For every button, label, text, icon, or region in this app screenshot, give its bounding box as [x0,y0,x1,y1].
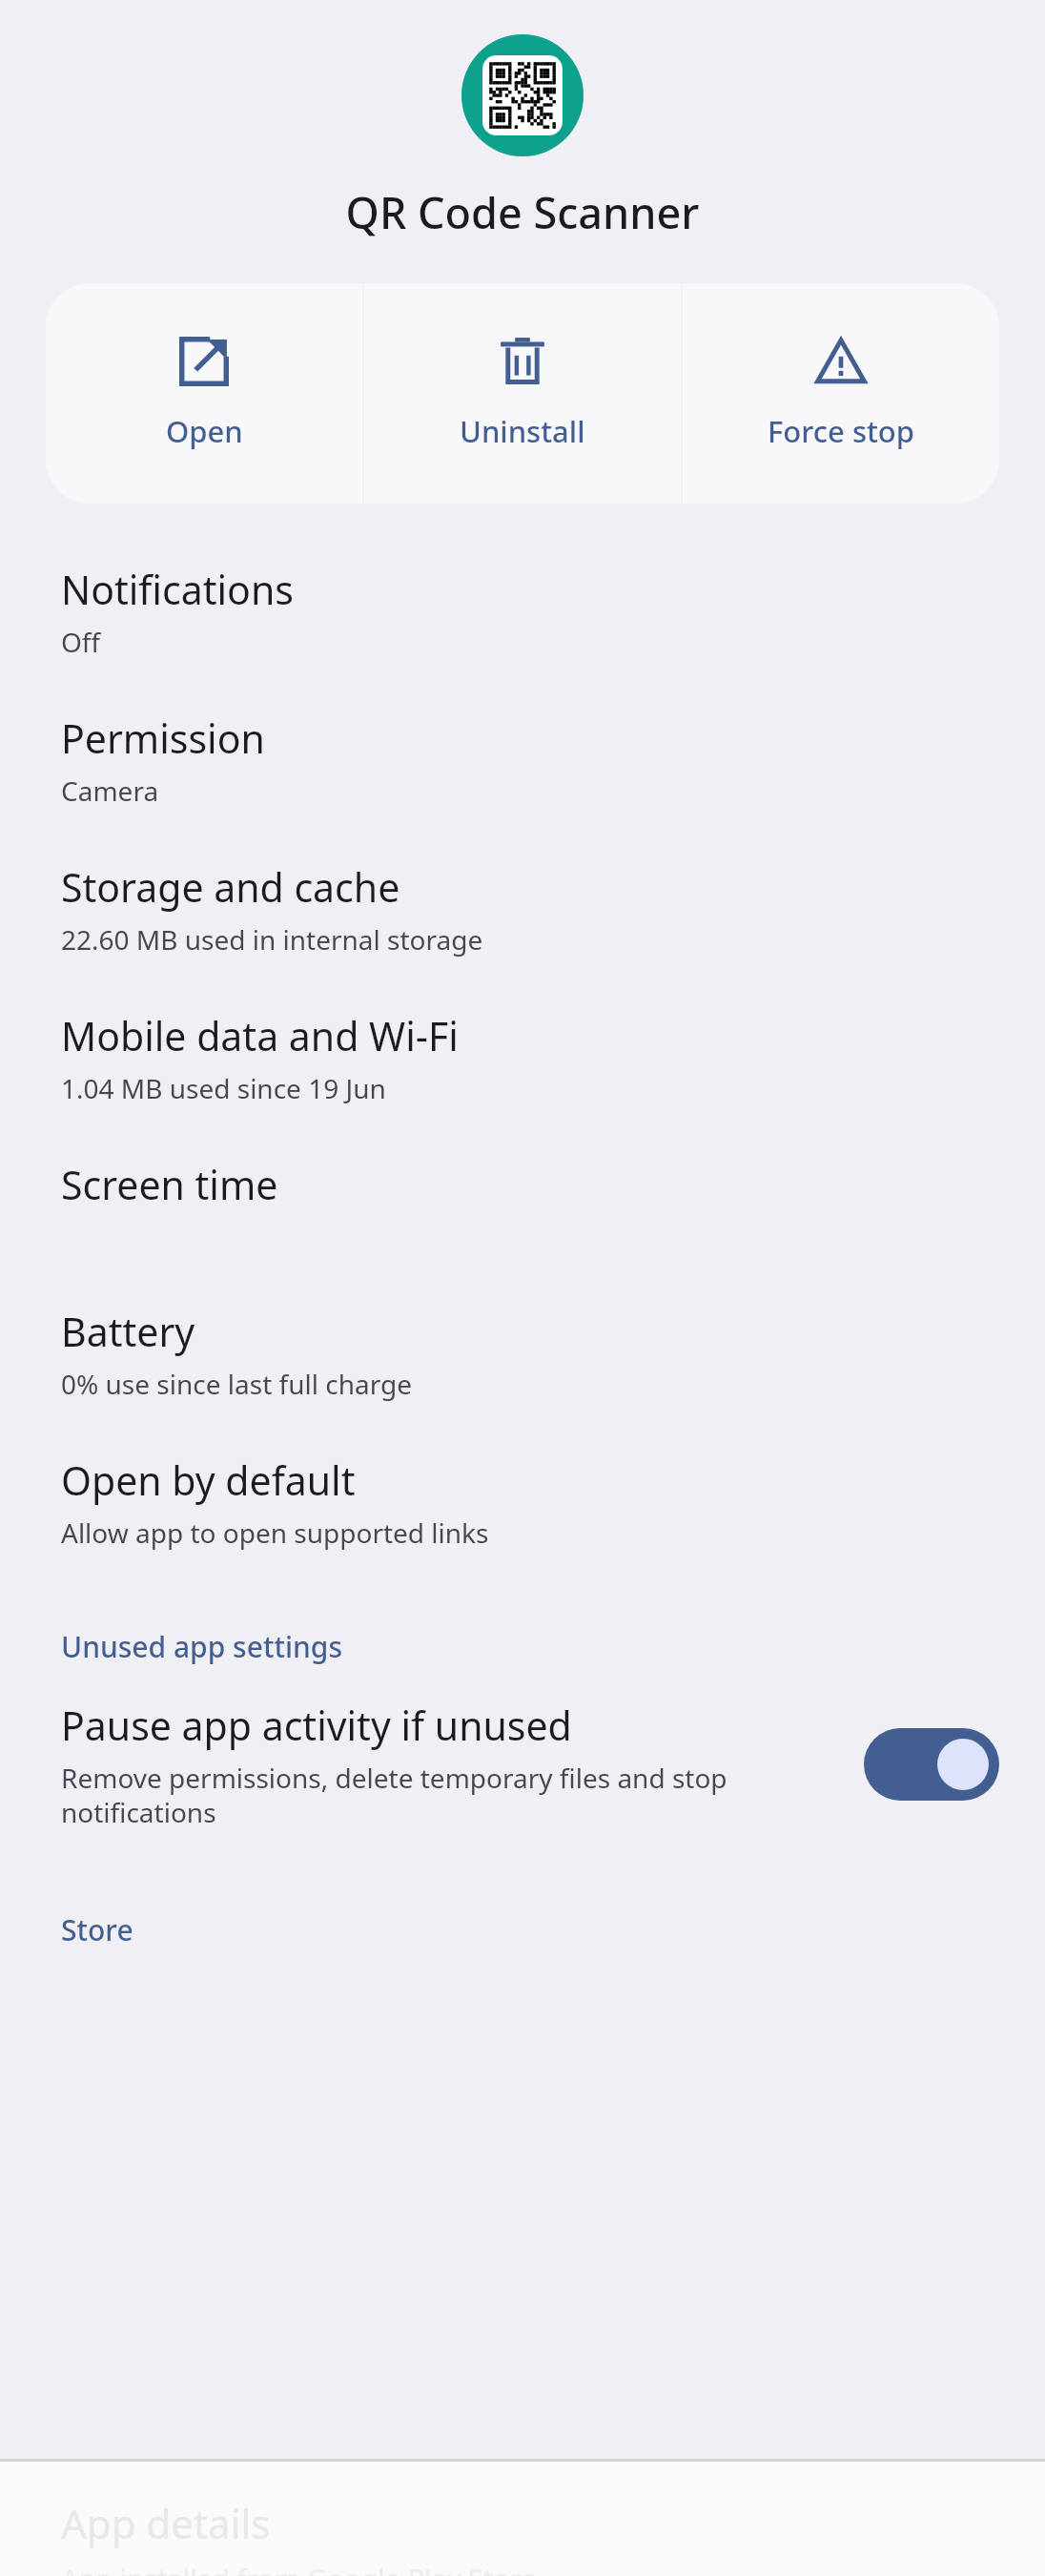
staticText: Off [61,624,101,660]
staticText: App installed from Google Play Store [61,2560,537,2576]
staticText: Mobile data and Wi-Fi [61,1009,459,1062]
other: Force stop [816,337,866,386]
staticText: App details [61,2496,271,2550]
staticText: Camera [61,773,159,809]
staticText: 22.60 MB used in internal storage [61,921,483,958]
button[interactable]: Notifications [0,549,1045,698]
staticText: QR Code Scanner [0,183,1045,241]
button[interactable]: Screen time [0,1144,1045,1291]
staticText: 1.04 MB used since 19 Jun [61,1070,386,1106]
staticText: Uninstall [460,411,585,451]
button[interactable]: Pause app activity if unused toggle [864,1728,999,1801]
button[interactable]: Uninstall [364,283,681,504]
button[interactable]: Permission [0,698,1045,847]
staticText: Notifications [61,563,294,616]
button[interactable]: Battery [0,1291,1045,1440]
staticText: Unused app settings [61,1627,342,1666]
button[interactable]: Open by default [0,1440,1045,1589]
button[interactable]: Pause app activity if unused [0,1691,1045,1838]
button[interactable]: Unused app settings [0,1623,1045,1670]
staticText: Store [61,1910,133,1949]
staticText: Screen time [61,1158,278,1211]
staticText: Pause app activity if unused [61,1699,572,1752]
button[interactable]: Storage and cache [0,847,1045,996]
button[interactable]: Open [46,283,362,504]
staticText: Storage and cache [61,860,400,914]
other: Open [179,337,229,386]
other: Uninstall [498,337,547,386]
button[interactable]: Mobile data and Wi-Fi [0,996,1045,1144]
button[interactable]: Store [0,1906,1045,1953]
staticText: Battery [61,1305,195,1358]
button[interactable]: Force stop [683,283,999,504]
staticText: Open by default [61,1453,356,1507]
staticText: Force stop [768,411,914,451]
staticText: Open [166,411,243,451]
staticText: Remove permissions, delete temporary fil… [61,1760,835,1830]
staticText: Permission [61,711,265,765]
staticText: 0% use since last full charge [61,1366,412,1402]
staticText: Allow app to open supported links [61,1515,489,1551]
